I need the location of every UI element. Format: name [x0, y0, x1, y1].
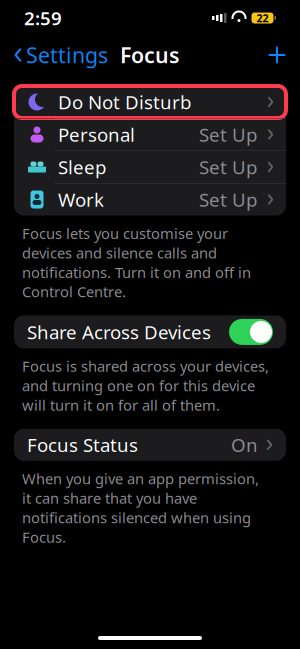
staticText: Personal [58, 122, 135, 147]
staticText: Settings [26, 41, 108, 69]
staticText: Work [58, 187, 104, 212]
staticText: When you give an app permission, it can … [22, 469, 259, 547]
staticText: Focus is shared across your devices, and… [22, 356, 269, 415]
button[interactable]: Work [14, 183, 286, 215]
staticText: Focus Status [27, 432, 138, 457]
button[interactable]: Share Across Devices [14, 315, 286, 348]
staticText: Set Up [199, 155, 257, 179]
staticText: Focus [120, 41, 180, 69]
staticText: 2:59 [24, 6, 62, 30]
staticText: 22 [256, 11, 268, 25]
button[interactable]: Personal [14, 118, 286, 150]
button[interactable]: Do Not Disturb [14, 86, 286, 118]
staticText: Do Not Disturb [58, 90, 191, 114]
staticText: Focus lets you customise your devices an… [22, 223, 251, 301]
button[interactable]: Add Focus [258, 40, 296, 70]
staticText: On [231, 432, 258, 457]
staticText: Set Up [199, 187, 257, 212]
staticText: Sleep [58, 155, 106, 179]
staticText: Share Across Devices [27, 319, 211, 344]
button[interactable]: Sleep [14, 151, 286, 183]
button[interactable]: Focus Status [14, 429, 286, 461]
button[interactable]: Settings [4, 35, 118, 75]
staticText: Set Up [199, 122, 257, 147]
